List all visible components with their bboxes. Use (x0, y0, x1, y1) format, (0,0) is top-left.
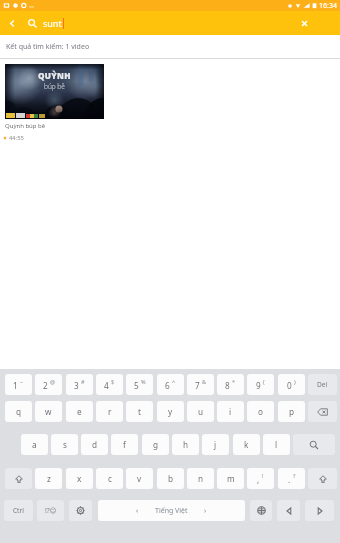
button[interactable]: Shift (5, 468, 32, 489)
button[interactable]: . (278, 468, 305, 489)
staticText: › (204, 506, 207, 516)
button[interactable]: e (66, 401, 93, 422)
staticText: j (214, 439, 217, 450)
button[interactable]: 3 (66, 374, 93, 395)
button[interactable]: Backspace (308, 401, 337, 422)
staticText: ! (262, 472, 264, 479)
staticText: Kết quả tìm kiếm: 1 video (6, 42, 90, 52)
button[interactable]: q (5, 401, 32, 422)
button[interactable]: a (21, 434, 48, 455)
staticText: s (63, 439, 67, 450)
staticText: n (198, 473, 204, 484)
staticText: 5 (134, 380, 139, 391)
button[interactable]: Move cursor right (305, 500, 334, 521)
staticText: 9 (256, 380, 261, 391)
button[interactable]: s (51, 434, 78, 455)
button[interactable]: z (35, 468, 62, 489)
button[interactable]: u (187, 401, 214, 422)
button[interactable]: 7 (187, 374, 214, 395)
button[interactable]: o (247, 401, 274, 422)
button[interactable]: m (217, 468, 244, 489)
staticText: w (45, 406, 52, 417)
button[interactable]: Change language (250, 500, 272, 521)
staticText: c (108, 473, 112, 484)
button[interactable]: 1 (5, 374, 32, 395)
staticText: e (77, 406, 82, 417)
button[interactable]: ‹ (98, 500, 245, 521)
staticText: p (289, 406, 295, 417)
staticText: * (232, 378, 236, 385)
staticText: d (92, 439, 98, 450)
button[interactable]: y (157, 401, 184, 422)
staticText: !?☺ (45, 506, 57, 515)
staticText: v (137, 473, 142, 484)
button[interactable]: l (263, 434, 290, 455)
staticText: i (229, 406, 232, 417)
button[interactable]: k (233, 434, 260, 455)
button[interactable]: , (247, 468, 274, 489)
staticText: búp bê (44, 82, 65, 91)
staticText: @ (50, 378, 55, 385)
staticText: ) (294, 378, 296, 385)
button[interactable]: 5 (126, 374, 153, 395)
button[interactable]: f (111, 434, 138, 455)
button[interactable]: v (126, 468, 153, 489)
button[interactable]: Clear search (295, 14, 313, 32)
staticText: 0 (287, 380, 292, 391)
staticText: 2 (43, 380, 48, 391)
button[interactable]: Search (293, 434, 335, 455)
button[interactable]: 2 (35, 374, 62, 395)
staticText: & (202, 378, 207, 385)
staticText: r (108, 406, 112, 417)
staticText: f (123, 439, 126, 450)
button[interactable]: Shift (308, 468, 337, 489)
staticText: k (244, 439, 249, 450)
staticText: , (257, 474, 260, 485)
staticText: 3 (74, 380, 79, 391)
staticText: . (288, 474, 291, 485)
button[interactable]: t (126, 401, 153, 422)
button[interactable]: j (202, 434, 229, 455)
button[interactable]: i (217, 401, 244, 422)
staticText: t (138, 406, 141, 417)
button[interactable]: r (96, 401, 123, 422)
button[interactable]: Control (4, 500, 33, 521)
staticText: Quỳnh búp bê (5, 122, 46, 130)
button[interactable]: x (66, 468, 93, 489)
staticText: ~ (20, 378, 24, 385)
staticText: $ (111, 378, 115, 385)
staticText: 7 (195, 380, 200, 391)
button[interactable]: 9 (247, 374, 274, 395)
button[interactable]: Back (3, 14, 21, 32)
staticText: 6 (165, 380, 170, 391)
staticText: QUỲNH (38, 70, 71, 81)
button[interactable]: c (96, 468, 123, 489)
staticText: 16:34 (319, 1, 337, 11)
button[interactable]: d (81, 434, 108, 455)
staticText: Tiếng Việt (155, 506, 188, 516)
button[interactable]: QUỲNH (5, 64, 106, 142)
staticText: ( (263, 378, 265, 385)
button[interactable]: g (142, 434, 169, 455)
staticText: ‹ (136, 506, 139, 516)
button[interactable]: w (35, 401, 62, 422)
staticText: g (153, 439, 159, 450)
button[interactable]: Symbols (37, 500, 64, 521)
staticText: ? (293, 472, 296, 479)
button[interactable]: n (187, 468, 214, 489)
button[interactable]: p (278, 401, 305, 422)
staticText: y (168, 406, 173, 417)
button[interactable]: b (157, 468, 184, 489)
button[interactable]: 4 (96, 374, 123, 395)
button[interactable]: 8 (217, 374, 244, 395)
button[interactable]: 6 (157, 374, 184, 395)
button[interactable]: Delete (308, 374, 337, 395)
staticText: # (81, 378, 85, 385)
staticText: ^ (172, 378, 176, 385)
staticText: o (258, 406, 263, 417)
staticText: q (16, 406, 22, 417)
button[interactable]: Move cursor left (277, 500, 300, 521)
button[interactable]: 0 (278, 374, 305, 395)
button[interactable]: h (172, 434, 199, 455)
button[interactable]: Settings (69, 500, 92, 521)
